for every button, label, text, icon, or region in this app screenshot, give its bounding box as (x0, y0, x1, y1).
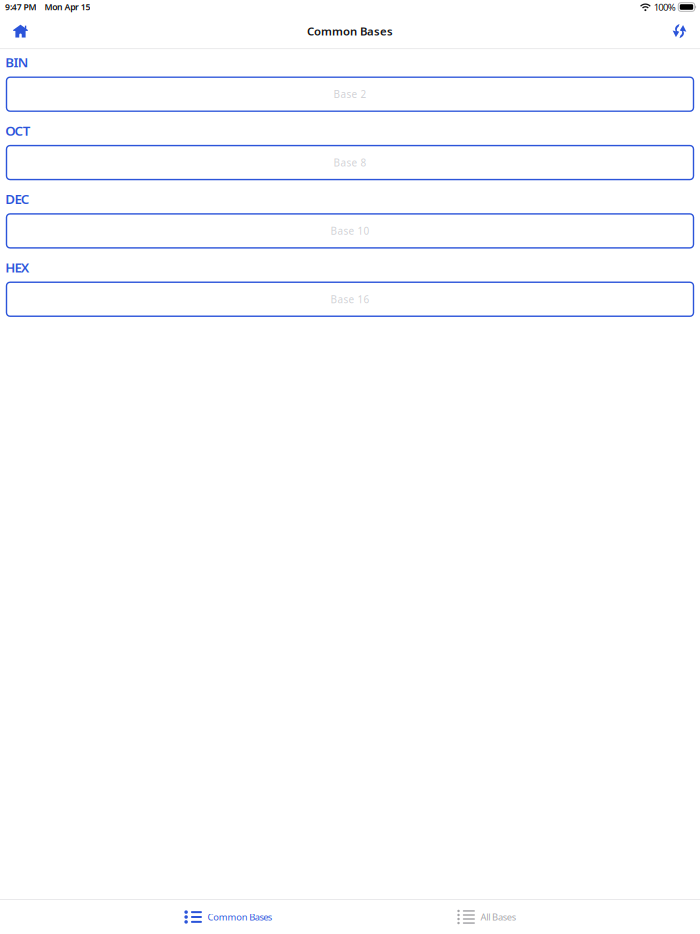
staticText: HEX (5, 258, 30, 276)
button[interactable]: Home (0, 15, 41, 47)
button[interactable]: Base 10 (6, 214, 693, 248)
staticText: Mon Apr 15 (44, 1, 90, 13)
staticText: OCT (5, 121, 31, 140)
staticText: All Bases (480, 911, 516, 923)
button[interactable]: Common Bases (184, 900, 272, 934)
button[interactable]: Base 2 (6, 77, 693, 111)
staticText: Base 8 (333, 156, 366, 169)
button[interactable]: Convert bases (659, 15, 700, 47)
staticText: Base 10 (330, 224, 369, 238)
button[interactable]: Base 16 (6, 282, 693, 316)
staticText: Base 16 (330, 292, 369, 306)
staticText: Base 2 (333, 87, 366, 101)
staticText: BIN (5, 53, 29, 71)
staticText: Common Bases (307, 23, 393, 39)
staticText: 9:47 PM (5, 1, 36, 13)
staticText: Common Bases (207, 911, 272, 923)
button[interactable]: All Bases (457, 900, 516, 934)
staticText: 100% (654, 0, 676, 14)
staticText: DEC (5, 190, 30, 208)
button[interactable]: Base 8 (6, 146, 693, 180)
